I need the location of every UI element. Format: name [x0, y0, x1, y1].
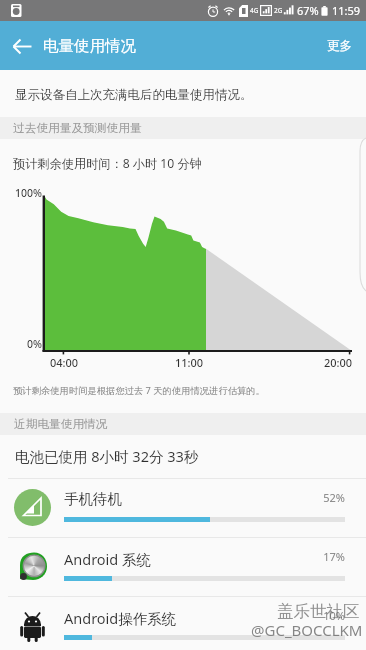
staticText: 显示设备自上次充满电后的电量使用情况。: [15, 87, 253, 103]
staticText: 手机待机: [64, 490, 122, 508]
staticText: 17%: [300, 549, 345, 564]
staticText: 11:59: [332, 3, 361, 18]
staticText: 4G: [250, 6, 259, 15]
staticText: 预计剩余使用时间是根据您过去 7 天的使用情况进行估算的。: [13, 384, 265, 397]
staticText: 2G: [274, 6, 283, 15]
button[interactable]: 更多: [313, 26, 366, 66]
staticText: 52%: [300, 490, 345, 505]
staticText: 预计剩余使用时间：8 小时 10 分钟: [13, 155, 202, 172]
staticText: Android 系统: [64, 549, 152, 569]
staticText: 近期电量使用情况: [14, 417, 108, 432]
staticText: @GC_BOCCLKM: [251, 620, 363, 640]
staticText: Android操作系统: [64, 608, 177, 628]
staticText: 电池已使用 8小时 32分 33秒: [15, 446, 199, 466]
button[interactable]: Android操作系统: [0, 596, 366, 650]
button[interactable]: Back: [5, 29, 39, 63]
staticText: 04:00: [46, 355, 82, 370]
staticText: 0%: [27, 337, 42, 351]
staticText: 11:00: [171, 355, 207, 370]
staticText: 20:00: [320, 355, 356, 370]
staticText: 67%: [297, 3, 319, 18]
staticText: 10%: [300, 608, 345, 623]
button[interactable]: 手机待机: [0, 478, 366, 537]
staticText: 过去使用量及预测使用量: [13, 121, 142, 136]
button[interactable]: Android 系统: [0, 537, 366, 596]
staticText: 更多: [327, 38, 352, 54]
staticText: 100%: [15, 186, 42, 200]
staticText: 电量使用情况: [43, 36, 136, 56]
staticText: 盖乐世社区: [277, 601, 360, 622]
